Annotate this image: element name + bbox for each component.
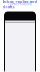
staticText: Threaded conversations — [8, 0, 32, 6]
staticText: Inbox, replies and drafts — [2, 0, 37, 9]
